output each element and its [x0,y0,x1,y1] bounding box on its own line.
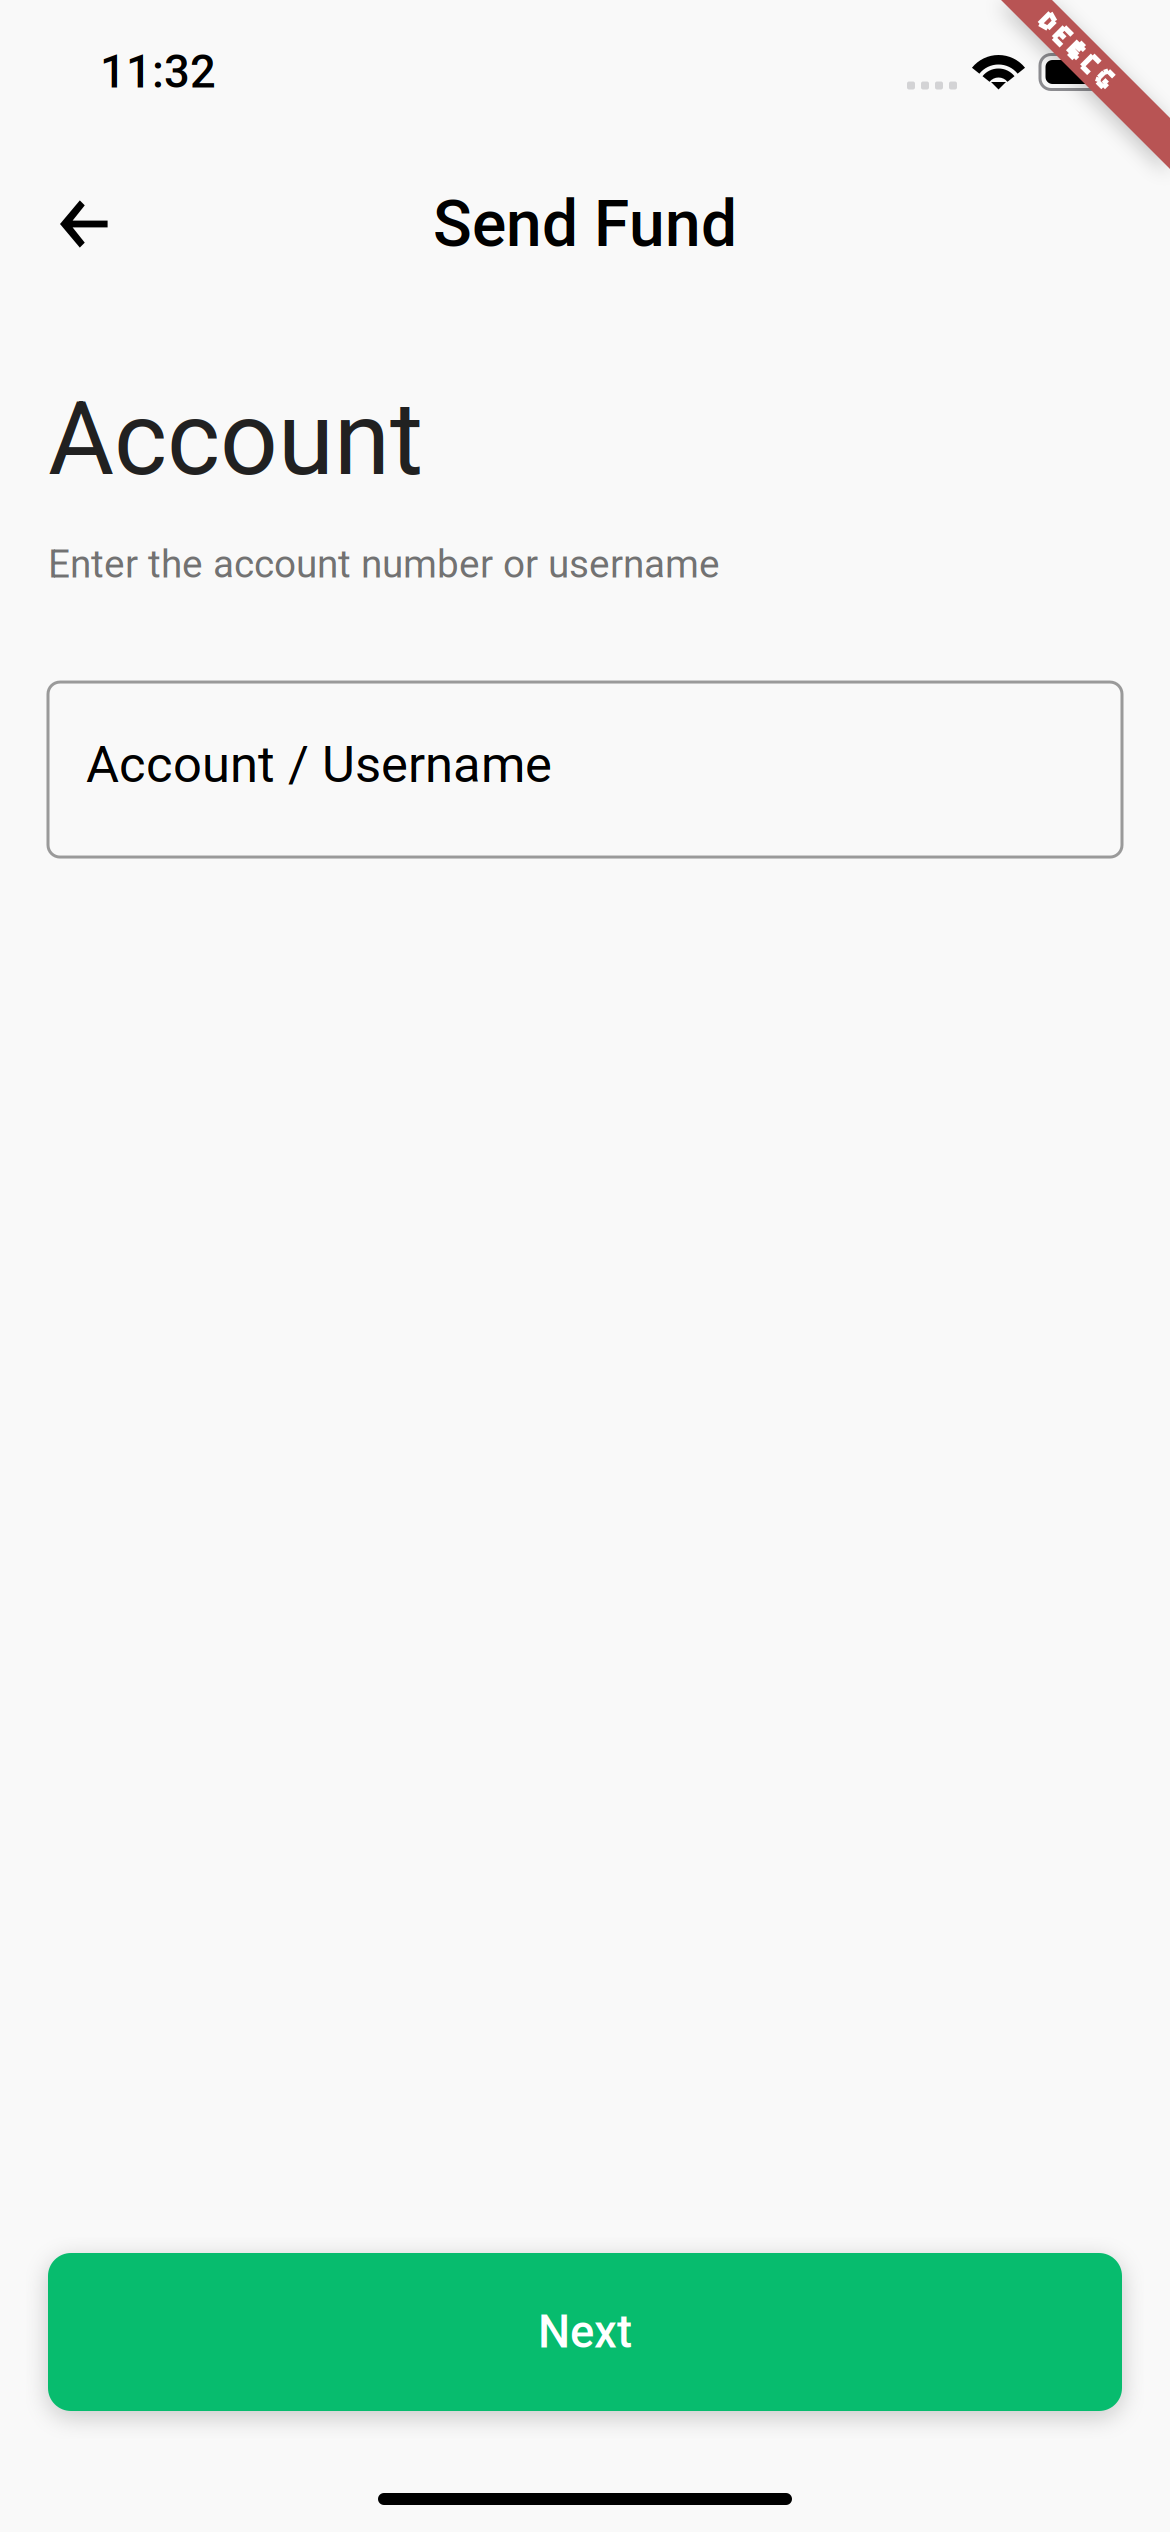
staticText: Account / Username [86,735,552,794]
button[interactable]: Account / Username [48,682,1122,857]
staticText: Next [538,2305,632,2358]
staticText: Send Fund [433,186,737,261]
staticText: Account [48,380,423,499]
button[interactable]: Next [48,2253,1122,2411]
button[interactable]: Back [12,164,156,284]
staticText: 11:32 [100,45,216,98]
staticText: Enter the account number or username [48,542,720,587]
